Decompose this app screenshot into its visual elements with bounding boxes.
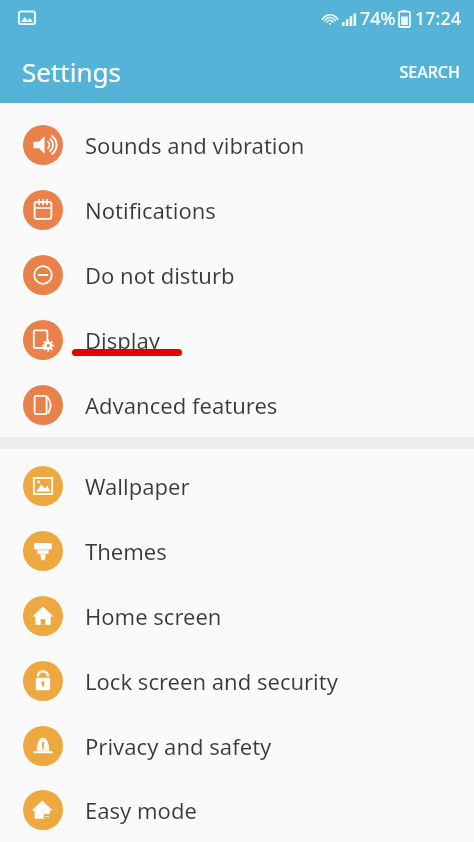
staticText: SEARCH: [399, 61, 460, 83]
staticText: Privacy and safety: [85, 731, 272, 761]
button[interactable]: Privacy and safety: [0, 713, 474, 778]
staticText: Easy mode: [85, 795, 197, 825]
staticText: Display: [85, 325, 161, 355]
button[interactable]: Wallpaper: [0, 453, 474, 518]
button[interactable]: Home screen: [0, 583, 474, 648]
button[interactable]: Notifications: [0, 177, 474, 242]
staticText: Home screen: [85, 601, 222, 631]
button[interactable]: Lock screen and security: [0, 648, 474, 713]
button[interactable]: Do not disturb: [0, 242, 474, 307]
button[interactable]: Display: [0, 307, 474, 372]
staticText: 74%: [360, 6, 396, 31]
staticText: Wallpaper: [85, 471, 190, 501]
button[interactable]: Easy mode: [0, 778, 474, 842]
button[interactable]: Advanced features: [0, 372, 474, 437]
staticText: Settings: [22, 54, 121, 89]
staticText: Themes: [85, 536, 167, 566]
staticText: Sounds and vibration: [85, 130, 305, 160]
button[interactable]: Sounds and vibration: [0, 112, 474, 177]
button[interactable]: SEARCH: [385, 51, 474, 93]
button[interactable]: Themes: [0, 518, 474, 583]
staticText: Notifications: [85, 195, 216, 225]
staticText: 17:24: [415, 6, 462, 31]
staticText: Advanced features: [85, 390, 278, 420]
staticText: Lock screen and security: [85, 666, 338, 696]
staticText: Do not disturb: [85, 260, 235, 290]
